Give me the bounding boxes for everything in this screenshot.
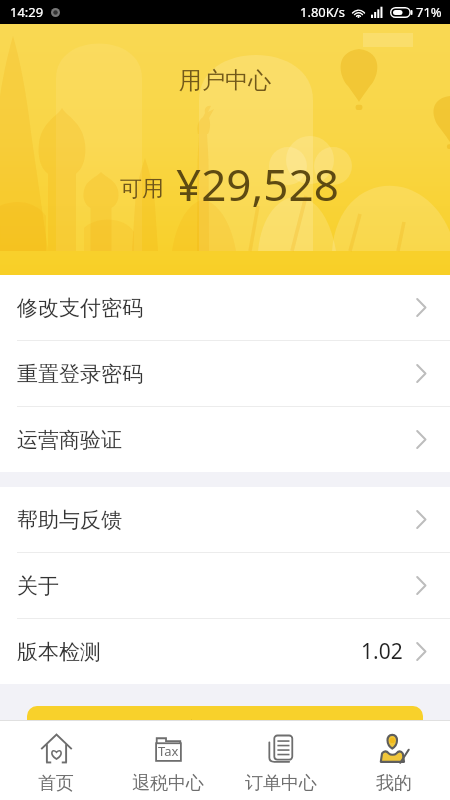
staticText: 退税中心 bbox=[132, 772, 204, 795]
button[interactable]: 退出登录 bbox=[27, 706, 423, 752]
staticText: 用户中心 bbox=[179, 66, 271, 95]
staticText: 帮助与反馈 bbox=[17, 507, 122, 533]
button[interactable]: 版本检测 bbox=[0, 619, 450, 684]
staticText: 首页 bbox=[38, 772, 74, 795]
button[interactable]: 重置登录密码 bbox=[0, 341, 450, 406]
button[interactable]: 订单中心 bbox=[224, 727, 337, 795]
staticText: ¥29,528 bbox=[176, 154, 339, 214]
staticText: 运营商验证 bbox=[17, 427, 122, 453]
staticText: 我的 bbox=[376, 772, 412, 795]
button[interactable]: 修改支付密码 bbox=[0, 275, 450, 340]
staticText: 修改支付密码 bbox=[17, 295, 143, 321]
button[interactable]: Tax bbox=[112, 727, 224, 795]
staticText: 重置登录密码 bbox=[17, 361, 143, 387]
staticText: 1.80K/s bbox=[300, 3, 345, 21]
button[interactable]: 帮助与反馈 bbox=[0, 487, 450, 552]
staticText: 71% bbox=[416, 3, 442, 21]
staticText: 可用 bbox=[120, 175, 164, 203]
staticText: 1.02 bbox=[361, 637, 403, 666]
button[interactable]: 关于 bbox=[0, 553, 450, 618]
button[interactable]: 我的 bbox=[337, 727, 450, 795]
staticText: 关于 bbox=[17, 573, 59, 599]
staticText: 退出登录 bbox=[189, 718, 261, 741]
button[interactable]: 首页 bbox=[0, 727, 112, 795]
staticText: 14:29 bbox=[10, 3, 44, 21]
staticText: Tax bbox=[158, 742, 179, 760]
staticText: 版本检测 bbox=[17, 639, 101, 665]
staticText: 订单中心 bbox=[245, 772, 317, 795]
button[interactable]: 运营商验证 bbox=[0, 407, 450, 472]
